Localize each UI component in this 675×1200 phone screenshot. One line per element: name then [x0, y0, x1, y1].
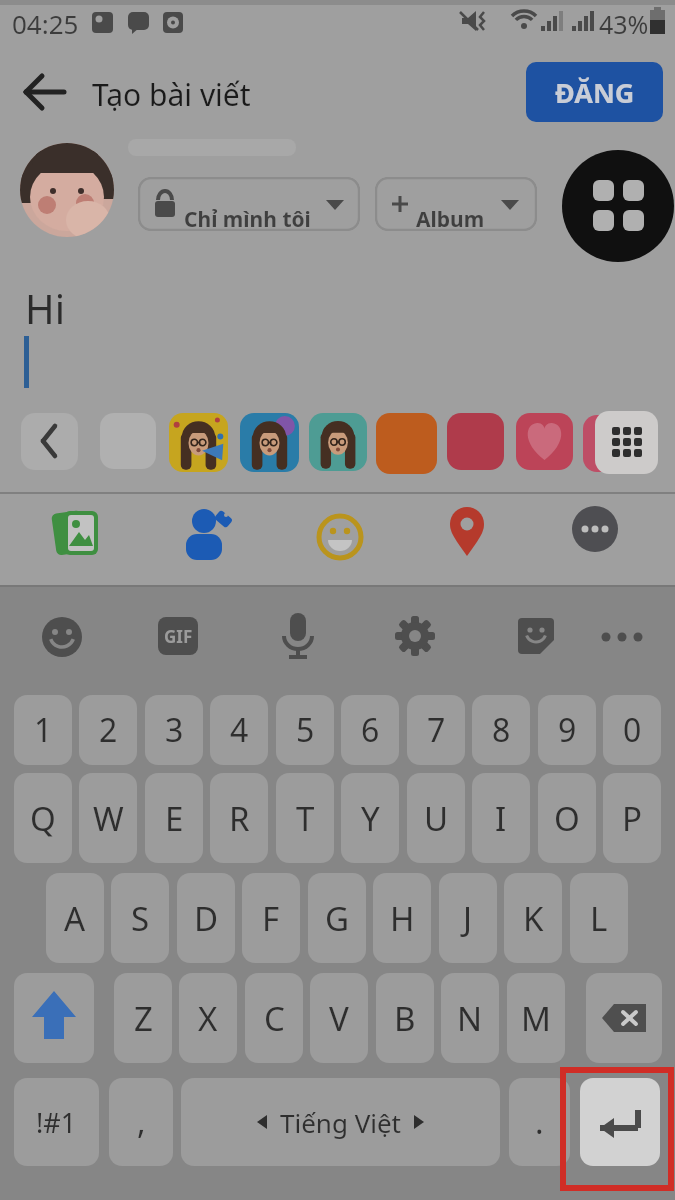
button[interactable]: 1	[14, 695, 72, 765]
button[interactable]: 2	[79, 695, 137, 765]
button[interactable]: A	[46, 873, 104, 963]
button[interactable]: H	[373, 873, 431, 963]
button[interactable]: M	[507, 973, 565, 1063]
staticText: .	[535, 1100, 544, 1144]
button[interactable]: P	[603, 773, 661, 863]
button[interactable]: 3	[145, 695, 203, 765]
button[interactable]: T	[276, 773, 334, 863]
button[interactable]: Tiếng Việt	[181, 1078, 500, 1166]
button[interactable]	[14, 973, 94, 1063]
button[interactable]: 8	[472, 695, 530, 765]
staticText: ĐĂNG	[555, 74, 635, 111]
button[interactable]	[580, 1078, 660, 1166]
staticText: I	[495, 796, 507, 841]
button[interactable]: B	[376, 973, 434, 1063]
button[interactable]	[240, 413, 299, 472]
staticText: 7	[427, 708, 446, 752]
button[interactable]: 6	[341, 695, 399, 765]
button[interactable]: !#1	[14, 1078, 99, 1166]
button[interactable]: C	[245, 973, 303, 1063]
staticText: M	[521, 996, 551, 1041]
button[interactable]: 5	[276, 695, 334, 765]
staticText: N	[457, 996, 483, 1041]
button[interactable]: R	[210, 773, 268, 863]
staticText: D	[194, 896, 219, 941]
button[interactable]	[562, 150, 674, 262]
staticText: C	[264, 996, 285, 1041]
button[interactable]: X	[179, 973, 237, 1063]
button[interactable]: J	[439, 873, 497, 963]
button[interactable]	[595, 411, 658, 474]
staticText: 4	[230, 708, 249, 752]
button[interactable]: W	[79, 773, 137, 863]
button[interactable]: N	[441, 973, 499, 1063]
button[interactable]	[276, 611, 320, 661]
button[interactable]	[21, 413, 78, 470]
button[interactable]	[40, 615, 84, 659]
button[interactable]	[309, 413, 367, 471]
button[interactable]: V	[310, 973, 368, 1063]
button[interactable]	[598, 627, 648, 647]
staticText: R	[229, 796, 250, 841]
button[interactable]	[447, 413, 504, 470]
staticText: Y	[361, 796, 380, 841]
staticText: 04:25	[12, 6, 79, 41]
button[interactable]: I	[472, 773, 530, 863]
button[interactable]: 7	[407, 695, 465, 765]
staticText: B	[394, 996, 416, 1041]
button[interactable]: D	[177, 873, 235, 963]
button[interactable]	[586, 973, 662, 1063]
staticText: X	[198, 996, 218, 1041]
button[interactable]: ĐĂNG	[526, 62, 663, 122]
button[interactable]	[169, 413, 228, 472]
button[interactable]: E	[145, 773, 203, 863]
button[interactable]: ,	[109, 1078, 173, 1166]
staticText: Z	[134, 996, 153, 1041]
button[interactable]	[48, 506, 108, 566]
button[interactable]: 4	[210, 695, 268, 765]
button[interactable]: F	[242, 873, 300, 963]
button[interactable]: Y	[341, 773, 399, 863]
button[interactable]: O	[538, 773, 596, 863]
staticText: Tạo bài viết	[92, 74, 251, 115]
button[interactable]: .	[509, 1078, 570, 1166]
button[interactable]: U	[407, 773, 465, 863]
button[interactable]: L	[570, 873, 628, 963]
staticText: F	[262, 896, 280, 941]
staticText: Chỉ mình tôi	[184, 205, 311, 231]
button[interactable]	[14, 62, 76, 122]
staticText: V	[329, 996, 349, 1041]
button[interactable]: Q	[14, 773, 72, 863]
button[interactable]	[178, 504, 238, 564]
staticText: 0	[623, 708, 642, 752]
button[interactable]	[316, 513, 364, 561]
staticText: E	[165, 796, 184, 841]
staticText: P	[622, 796, 642, 841]
button[interactable]: Chỉ mình tôi	[138, 177, 360, 231]
button[interactable]	[516, 413, 573, 470]
staticText: 8	[492, 708, 511, 752]
staticText: Q	[30, 796, 56, 841]
button[interactable]	[444, 504, 492, 564]
staticText: K	[523, 896, 544, 941]
button[interactable]	[516, 616, 556, 656]
button[interactable]: S	[111, 873, 169, 963]
button[interactable]	[572, 506, 620, 554]
staticText: U	[424, 796, 449, 841]
staticText: 1	[34, 708, 53, 752]
staticText: W	[93, 796, 124, 841]
staticText: ,	[137, 1100, 146, 1144]
staticText: 2	[99, 708, 118, 752]
button[interactable]: G	[308, 873, 366, 963]
button[interactable]	[394, 615, 438, 659]
button[interactable]: K	[504, 873, 562, 963]
button[interactable]: Album	[375, 177, 537, 231]
button[interactable]: Z	[114, 973, 172, 1063]
staticText: O	[554, 796, 580, 841]
button[interactable]	[100, 413, 156, 469]
button[interactable]: 0	[603, 695, 661, 765]
staticText: !#1	[36, 1104, 77, 1141]
button[interactable]: GIF	[158, 617, 198, 655]
button[interactable]: 9	[538, 695, 596, 765]
button[interactable]	[376, 413, 437, 474]
